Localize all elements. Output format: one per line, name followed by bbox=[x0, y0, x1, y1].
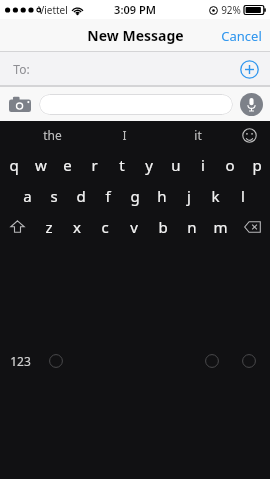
staticText: the bbox=[43, 127, 62, 143]
button[interactable]: it bbox=[161, 121, 234, 149]
staticText: Viettel bbox=[38, 3, 68, 17]
staticText: d bbox=[76, 186, 86, 206]
button[interactable]: h bbox=[148, 180, 175, 211]
staticText: New Message bbox=[87, 26, 184, 45]
button[interactable]: 123 bbox=[0, 242, 40, 479]
staticText: I bbox=[122, 127, 127, 143]
staticText: m bbox=[213, 217, 228, 237]
staticText: s bbox=[50, 186, 58, 206]
button[interactable]: Add contact bbox=[240, 60, 259, 79]
button[interactable]: i bbox=[189, 149, 216, 180]
button[interactable]: To: bbox=[0, 52, 270, 86]
staticText: e bbox=[63, 155, 72, 175]
button[interactable] bbox=[39, 94, 233, 115]
staticText: 123 bbox=[10, 353, 31, 369]
button[interactable]: f bbox=[94, 180, 121, 211]
staticText: t bbox=[119, 155, 125, 175]
button[interactable]: d bbox=[67, 180, 94, 211]
staticText: To: bbox=[13, 61, 30, 77]
button[interactable]: Cancel bbox=[213, 21, 270, 51]
button[interactable]: Record audio bbox=[240, 93, 263, 116]
button[interactable]: p bbox=[243, 149, 270, 180]
button[interactable]: Camera bbox=[7, 91, 33, 117]
staticText: h bbox=[157, 186, 167, 206]
button[interactable]: Shift bbox=[0, 211, 35, 242]
staticText: x bbox=[73, 217, 81, 237]
button[interactable]: s bbox=[40, 180, 67, 211]
staticText: 3:09 PM bbox=[114, 2, 156, 17]
staticText: c bbox=[101, 217, 109, 237]
staticText: o bbox=[225, 155, 235, 175]
staticText: y bbox=[145, 155, 153, 175]
button[interactable]: u bbox=[162, 149, 189, 180]
button[interactable]: r bbox=[81, 149, 108, 180]
button[interactable]: e bbox=[54, 149, 81, 180]
button[interactable]: y bbox=[135, 149, 162, 180]
staticText: l bbox=[241, 186, 245, 206]
button[interactable]: a bbox=[14, 180, 40, 211]
staticText: a bbox=[23, 186, 32, 206]
staticText: w bbox=[35, 155, 47, 175]
staticText: u bbox=[171, 155, 181, 175]
button[interactable]: m bbox=[206, 211, 235, 242]
staticText: g bbox=[130, 186, 140, 206]
staticText: v bbox=[130, 217, 138, 237]
staticText: r bbox=[91, 155, 98, 175]
staticText: f bbox=[105, 186, 111, 206]
staticText: Cancel bbox=[221, 27, 262, 45]
staticText: it bbox=[194, 127, 202, 143]
staticText: z bbox=[45, 217, 53, 237]
button[interactable]: l bbox=[229, 180, 256, 211]
button[interactable]: v bbox=[119, 211, 148, 242]
button[interactable]: Backspace bbox=[235, 211, 270, 242]
staticText: p bbox=[252, 155, 262, 175]
staticText: j bbox=[187, 186, 191, 206]
button[interactable]: j bbox=[175, 180, 202, 211]
button[interactable]: q bbox=[0, 149, 27, 180]
staticText: 92% bbox=[221, 3, 241, 17]
button[interactable]: the bbox=[16, 121, 88, 149]
button[interactable]: o bbox=[216, 149, 243, 180]
staticText: i bbox=[201, 155, 205, 175]
button[interactable]: I bbox=[88, 121, 161, 149]
staticText: q bbox=[9, 155, 19, 175]
button[interactable]: c bbox=[91, 211, 119, 242]
button[interactable]: w bbox=[27, 149, 54, 180]
staticText: n bbox=[187, 217, 197, 237]
button[interactable]: x bbox=[63, 211, 91, 242]
button[interactable]: Emoji bbox=[234, 121, 264, 149]
button[interactable]: z bbox=[35, 211, 63, 242]
button[interactable]: b bbox=[148, 211, 177, 242]
staticText: k bbox=[211, 186, 220, 206]
button[interactable]: k bbox=[202, 180, 229, 211]
button[interactable]: g bbox=[121, 180, 148, 211]
button[interactable]: n bbox=[177, 211, 206, 242]
button[interactable]: t bbox=[108, 149, 135, 180]
staticText: b bbox=[158, 217, 168, 237]
